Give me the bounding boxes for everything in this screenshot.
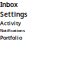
staticText: Portfolio	[0, 34, 22, 41]
staticText: Settings	[0, 10, 27, 19]
staticText: Activity	[0, 20, 21, 27]
staticText: Notifications	[0, 28, 25, 33]
staticText: Inbox	[0, 0, 18, 9]
